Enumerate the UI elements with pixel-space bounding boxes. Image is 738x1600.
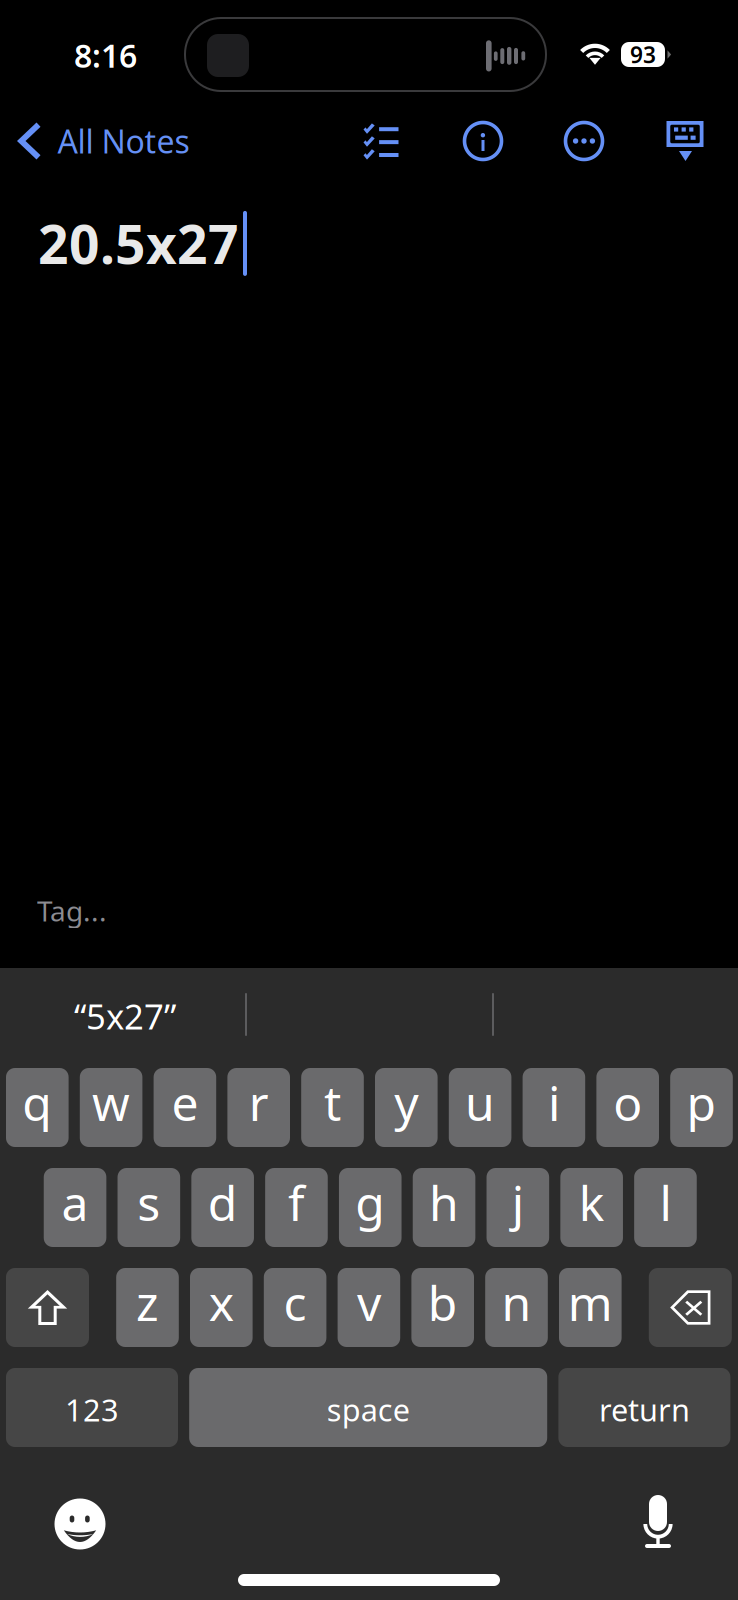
- button[interactable]: x: [190, 1268, 253, 1347]
- button[interactable]: b: [411, 1268, 474, 1347]
- button[interactable]: Delete: [649, 1268, 732, 1347]
- staticText: c: [284, 1271, 307, 1334]
- staticText: 93: [630, 39, 656, 69]
- staticText: 123: [65, 1389, 119, 1430]
- button[interactable]: return: [558, 1368, 730, 1447]
- staticText: b: [428, 1271, 458, 1334]
- button[interactable]: u: [449, 1068, 511, 1147]
- staticText: l: [659, 1171, 671, 1234]
- staticText: 8:16: [74, 34, 137, 76]
- button[interactable]: 123: [6, 1368, 178, 1447]
- button[interactable]: c: [264, 1268, 326, 1347]
- staticText: r: [249, 1071, 269, 1134]
- staticText: u: [465, 1071, 495, 1134]
- button[interactable]: q: [6, 1068, 69, 1147]
- staticText: return: [599, 1389, 690, 1430]
- staticText: “5x27”: [74, 993, 176, 1039]
- button[interactable]: Info: [445, 103, 521, 179]
- button[interactable]: Shift: [6, 1268, 89, 1347]
- staticText: v: [357, 1271, 381, 1334]
- button[interactable]: space: [189, 1368, 547, 1447]
- staticText: i: [548, 1071, 560, 1134]
- staticText: Tag...: [37, 892, 107, 929]
- button[interactable]: Emoji: [44, 1488, 116, 1560]
- staticText: e: [171, 1071, 198, 1134]
- staticText: w: [92, 1071, 130, 1134]
- button[interactable]: g: [339, 1168, 401, 1247]
- staticText: o: [613, 1071, 642, 1134]
- button[interactable]: e: [154, 1068, 216, 1147]
- button[interactable]: d: [191, 1168, 254, 1247]
- staticText: f: [288, 1171, 305, 1234]
- staticText: p: [686, 1071, 716, 1134]
- staticText: q: [22, 1071, 52, 1134]
- staticText: j: [512, 1171, 524, 1234]
- staticText: space: [327, 1389, 410, 1430]
- staticText: n: [501, 1271, 531, 1334]
- staticText: m: [568, 1271, 613, 1334]
- button[interactable]: m: [559, 1268, 622, 1347]
- staticText: x: [209, 1271, 234, 1334]
- button[interactable]: Dictation: [622, 1486, 694, 1558]
- button[interactable]: All Notes: [0, 103, 250, 179]
- button[interactable]: t: [301, 1068, 364, 1147]
- button[interactable]: p: [670, 1068, 733, 1147]
- button[interactable]: n: [485, 1268, 548, 1347]
- staticText: d: [208, 1171, 238, 1234]
- staticText: s: [137, 1171, 160, 1234]
- button[interactable]: z: [116, 1268, 179, 1347]
- staticText: 20.5x27: [38, 208, 239, 279]
- staticText: y: [394, 1071, 418, 1134]
- button[interactable]: i: [523, 1068, 585, 1147]
- button[interactable]: r: [227, 1068, 290, 1147]
- button[interactable]: y: [375, 1068, 438, 1147]
- button[interactable]: s: [117, 1168, 180, 1247]
- button[interactable]: o: [596, 1068, 659, 1147]
- staticText: g: [355, 1171, 385, 1234]
- staticText: z: [136, 1271, 159, 1334]
- button[interactable]: a: [44, 1168, 106, 1247]
- button[interactable]: w: [80, 1068, 142, 1147]
- button[interactable]: v: [338, 1268, 400, 1347]
- staticText: a: [61, 1171, 88, 1234]
- staticText: h: [429, 1171, 459, 1234]
- button[interactable]: Hide keyboard: [647, 103, 723, 179]
- button[interactable]: h: [413, 1168, 475, 1247]
- staticText: k: [579, 1171, 605, 1234]
- button[interactable]: More options: [546, 103, 622, 179]
- button[interactable]: Checklist: [343, 103, 419, 179]
- button[interactable]: j: [487, 1168, 549, 1247]
- staticText: All Notes: [57, 120, 189, 162]
- staticText: t: [324, 1071, 341, 1134]
- button[interactable]: f: [265, 1168, 328, 1247]
- button[interactable]: l: [634, 1168, 697, 1247]
- button[interactable]: k: [560, 1168, 623, 1247]
